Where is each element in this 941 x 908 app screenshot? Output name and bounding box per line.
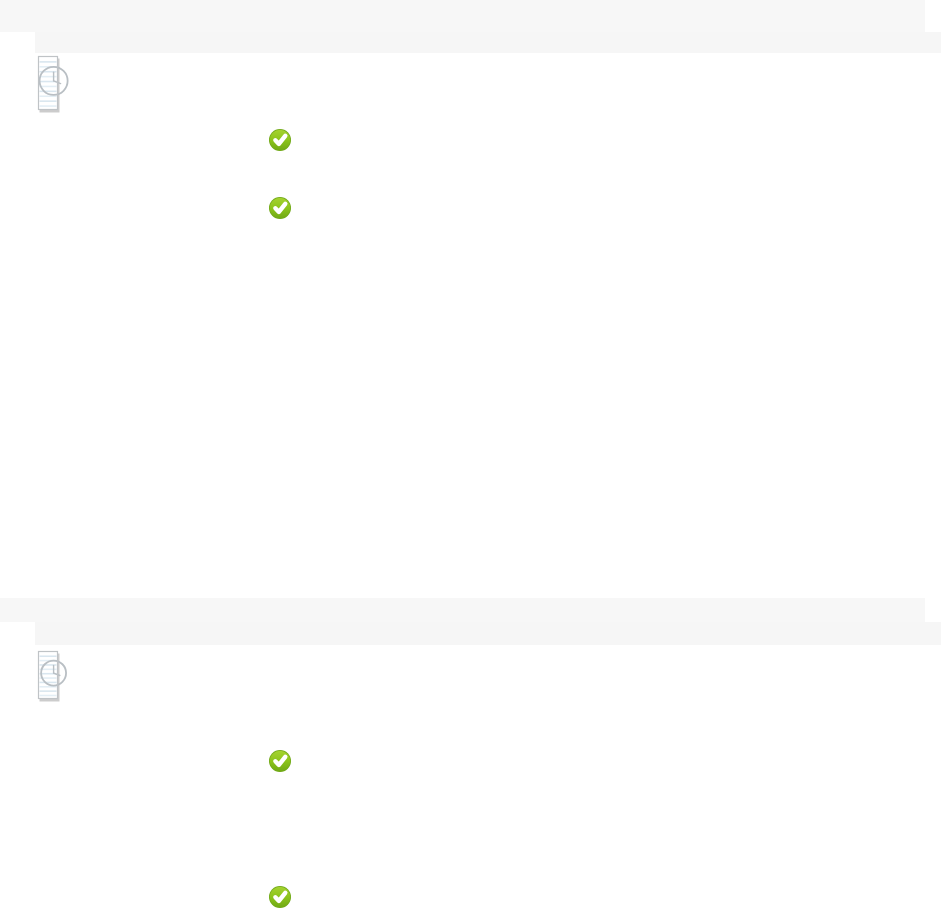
button[interactable]: Document preview: [38, 56, 58, 110]
button[interactable]: Verified: [269, 750, 291, 772]
button[interactable]: Verified: [269, 197, 291, 219]
button[interactable]: Document preview: [38, 651, 58, 699]
button[interactable]: Verified: [269, 886, 291, 908]
button[interactable]: Verified: [269, 129, 291, 151]
